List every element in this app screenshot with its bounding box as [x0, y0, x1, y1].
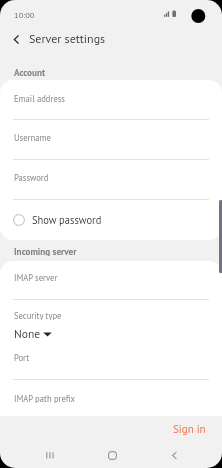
staticText: Password	[14, 172, 49, 182]
staticText: Server settings	[29, 31, 106, 45]
button[interactable]: Security type	[0, 300, 222, 340]
button[interactable]: Show password	[0, 200, 222, 240]
staticText: IMAP server	[14, 272, 58, 282]
button[interactable]: Sign in	[160, 418, 218, 440]
button[interactable]: Navigate up	[4, 27, 29, 52]
button[interactable]: IMAP server	[0, 261, 222, 299]
button[interactable]: IMAP path prefix	[0, 380, 222, 416]
button[interactable]: Username	[0, 120, 222, 160]
button[interactable]: Port	[0, 340, 222, 379]
button[interactable]: Recent apps	[30, 441, 70, 468]
staticText: Show password	[32, 213, 102, 227]
staticText: Username	[14, 132, 51, 142]
button[interactable]: Home	[92, 441, 132, 468]
staticText: 10:00	[14, 9, 35, 19]
staticText: None	[14, 326, 41, 341]
staticText: Incoming server	[14, 246, 77, 256]
button[interactable]: Back	[154, 441, 194, 468]
staticText: Security type	[14, 310, 62, 320]
staticText: Email address	[14, 93, 65, 103]
staticText: IMAP path prefix	[14, 393, 75, 403]
button[interactable]: Password	[0, 160, 222, 199]
button[interactable]: Email address	[0, 80, 222, 119]
staticText: Account	[14, 67, 46, 77]
staticText: Port	[14, 352, 30, 362]
staticText: Sign in	[173, 422, 206, 436]
